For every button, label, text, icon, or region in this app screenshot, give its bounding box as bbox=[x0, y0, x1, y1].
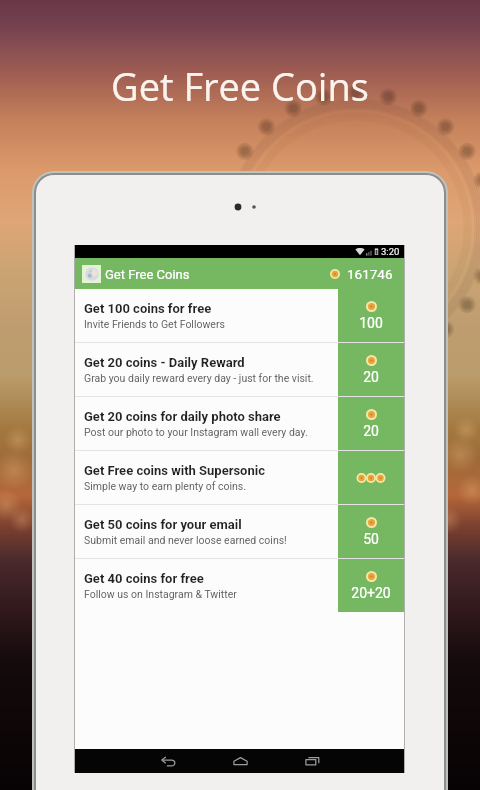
staticText: Get 40 coins for free bbox=[84, 571, 204, 586]
button[interactable]: Get 100 coins for free bbox=[75, 289, 404, 342]
button[interactable]: Back bbox=[149, 749, 187, 773]
button[interactable]: Get Free coins with Supersonic bbox=[75, 451, 404, 504]
button[interactable]: Get 20 coins for daily photo share bbox=[75, 397, 404, 450]
staticText: Post our photo to your Instagram wall ev… bbox=[84, 426, 308, 438]
staticText: 50 bbox=[363, 531, 379, 547]
staticText: Get 20 coins for daily photo share bbox=[84, 409, 281, 424]
staticText: Invite Friends to Get Followers bbox=[84, 318, 225, 330]
staticText: Get Free Coins bbox=[105, 267, 190, 282]
staticText: 100 bbox=[359, 315, 383, 331]
staticText: 20 bbox=[363, 369, 379, 385]
button[interactable]: Get 20 coins - Daily Reward bbox=[75, 343, 404, 396]
staticText: Follow us on Instagram & Twitter bbox=[84, 588, 237, 600]
staticText: 20 bbox=[363, 423, 379, 439]
staticText: 3:20 bbox=[381, 246, 400, 257]
staticText: Get 20 coins - Daily Reward bbox=[84, 355, 245, 370]
staticText: Get Free Coins bbox=[111, 60, 369, 112]
staticText: Get 100 coins for free bbox=[84, 301, 212, 316]
button[interactable]: Get 50 coins for your email bbox=[75, 505, 404, 558]
staticText: Get Free coins with Supersonic bbox=[84, 463, 265, 478]
button[interactable]: Get Free Coins bbox=[75, 258, 404, 289]
button[interactable]: Recent apps bbox=[293, 749, 331, 773]
staticText: Grab you daily reward every day - just f… bbox=[84, 372, 314, 384]
staticText: Submit email and never loose earned coin… bbox=[84, 534, 287, 546]
staticText: Simple way to earn plenty of coins. bbox=[84, 480, 246, 492]
button[interactable]: Get 40 coins for free bbox=[75, 559, 404, 612]
button[interactable]: Home bbox=[221, 749, 259, 773]
staticText: 20+20 bbox=[351, 585, 391, 601]
staticText: Get 50 coins for your email bbox=[84, 517, 242, 532]
staticText: 161746 bbox=[347, 266, 393, 282]
